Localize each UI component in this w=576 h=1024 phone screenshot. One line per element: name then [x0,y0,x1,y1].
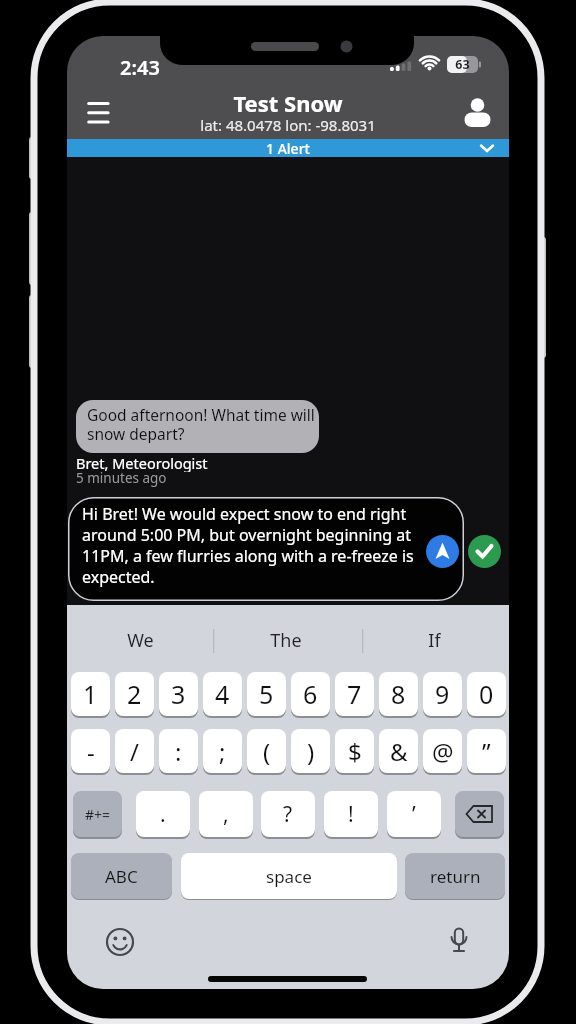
staticText: expected. [82,566,155,587]
button[interactable]: @ [423,729,462,773]
button[interactable]: 8 [379,672,418,716]
staticText: ’ [412,800,416,829]
button[interactable]: ! [324,791,378,837]
button[interactable]: space [181,853,397,899]
staticText: 2 [127,677,142,711]
button[interactable]: ABC [71,853,172,899]
staticText: : [175,735,182,768]
staticText: $ [348,735,362,768]
staticText: . [160,800,166,829]
button[interactable]: 5 [247,672,286,716]
staticText: 5 minutes ago [76,469,167,487]
staticText: ; [219,735,226,768]
staticText: If [428,628,441,652]
staticText: lat: 48.0478 lon: -98.8031 [200,115,376,134]
staticText: Bret, Meteorologist [76,453,208,472]
staticText: / [130,735,139,768]
button[interactable]: & [379,729,418,773]
staticText: The [270,628,302,652]
staticText: ( [263,735,271,768]
staticText: 11PM, a few flurries along with a re-fre… [82,545,414,566]
button[interactable]: , [199,791,253,837]
button[interactable]: . [136,791,190,837]
button[interactable]: 1 Alert [67,139,509,157]
staticText: return [430,865,481,888]
button[interactable]: 9 [423,672,462,716]
staticText: Hi Bret! We would expect snow to end rig… [82,503,407,524]
button[interactable] [455,791,504,837]
button[interactable]: ( [247,729,286,773]
staticText: ) [307,735,315,768]
staticText: ! [348,800,354,829]
button[interactable]: 4 [203,672,242,716]
staticText: 1 Alert [266,139,310,157]
button[interactable]: $ [335,729,374,773]
button[interactable]: 0 [467,672,506,716]
staticText: around 5:00 PM, but overnight beginning … [82,524,412,545]
staticText: 5 [259,677,274,711]
button[interactable]: #+= [73,791,122,837]
button[interactable]: return [405,853,505,899]
button[interactable]: ” [467,729,506,773]
button[interactable]: 3 [159,672,198,716]
staticText: 0 [479,677,494,711]
button[interactable] [468,535,501,568]
staticText: space [266,865,312,888]
staticText: 1 [83,677,98,711]
button[interactable]: ’ [387,791,441,837]
staticText: 2:43 [120,54,160,75]
staticText: 7 [347,677,362,711]
staticText: 3 [171,677,186,711]
staticText: & [390,735,408,768]
button[interactable] [79,92,119,132]
button[interactable] [426,535,459,568]
staticText: Test Snow [233,88,343,112]
staticText: snow depart? [87,423,185,443]
button[interactable]: ) [291,729,330,773]
staticText: 8 [391,677,406,711]
button[interactable]: 7 [335,672,374,716]
staticText: 4 [215,677,230,711]
staticText: - [87,735,95,768]
button[interactable] [104,926,136,958]
button[interactable]: / [115,729,154,773]
staticText: #+= [85,805,111,824]
button[interactable]: ? [261,791,315,837]
button[interactable]: ; [203,729,242,773]
staticText: @ [432,735,454,768]
button[interactable] [459,94,497,132]
staticText: We [127,628,154,652]
staticText: ? [283,800,293,829]
staticText: ” [482,735,491,768]
button[interactable]: 1 [71,672,110,716]
staticText: Good afternoon! What time will [87,404,315,424]
button[interactable]: 2 [115,672,154,716]
button[interactable]: : [159,729,198,773]
staticText: , [223,800,229,829]
button[interactable]: 6 [291,672,330,716]
staticText: 63 [455,56,470,73]
staticText: 9 [435,677,450,711]
staticText: ABC [105,865,138,888]
button[interactable]: - [71,729,110,773]
staticText: 6 [303,677,318,711]
button[interactable] [443,926,475,958]
